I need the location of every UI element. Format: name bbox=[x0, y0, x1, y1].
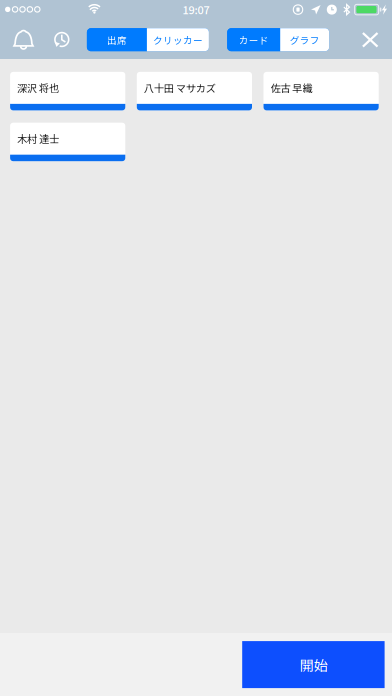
button[interactable]: Close bbox=[355, 20, 385, 59]
staticText: 佐古 早織 bbox=[270, 81, 312, 95]
button[interactable]: Notifications bbox=[4, 20, 42, 59]
button[interactable]: 開始 bbox=[242, 641, 385, 688]
button[interactable]: グラフ bbox=[280, 28, 329, 51]
staticText: 木村 達士 bbox=[17, 131, 59, 146]
button[interactable]: 木村 達士 bbox=[10, 123, 125, 161]
button[interactable]: 深沢 将也 bbox=[10, 72, 125, 110]
button[interactable]: クリッカー bbox=[147, 28, 209, 51]
button[interactable]: 八十田 マサカズ bbox=[137, 72, 252, 110]
staticText: 出席 bbox=[107, 33, 127, 47]
staticText: グラフ bbox=[290, 33, 320, 47]
staticText: カード bbox=[239, 33, 269, 47]
button[interactable]: カード bbox=[227, 28, 280, 51]
button[interactable]: 出席 bbox=[87, 28, 147, 51]
staticText: 19:07 bbox=[182, 2, 209, 17]
staticText: 開始 bbox=[299, 654, 327, 675]
button[interactable]: History bbox=[44, 20, 80, 59]
staticText: クリッカー bbox=[153, 33, 203, 47]
staticText: 八十田 マサカズ bbox=[144, 81, 216, 95]
staticText: 深沢 将也 bbox=[17, 81, 59, 95]
button[interactable]: 佐古 早織 bbox=[263, 72, 379, 110]
